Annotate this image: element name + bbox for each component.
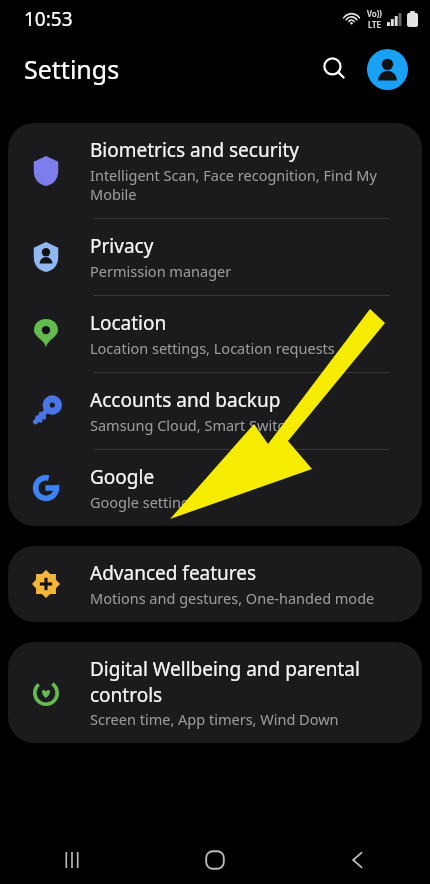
staticText: Privacy [90,233,154,259]
button[interactable]: Privacy [8,219,422,295]
staticText: Vo)) [367,8,382,19]
staticText: Digital Wellbeing and parental controls [90,656,402,707]
staticText: 10:53 [24,6,73,32]
staticText: Permission manager [90,261,232,281]
staticText: Intelligent Scan, Face recognition, Find… [90,165,402,204]
button[interactable]: Accounts and backup [8,373,422,449]
staticText: Google [90,464,155,490]
staticText: Accounts and backup [90,387,281,413]
button[interactable]: Home [180,837,250,883]
staticText: Google settings [90,492,197,512]
button[interactable]: Back [323,837,393,883]
button[interactable]: Biometrics and security [8,123,422,218]
button[interactable]: Search [311,46,357,92]
staticText: Samsung Cloud, Smart Switch [90,415,294,435]
button[interactable]: Recents [37,837,107,883]
button[interactable]: Account [367,49,408,90]
staticText: Biometrics and security [90,137,300,163]
staticText: Location settings, Location requests [90,338,335,358]
staticText: Settings [24,52,120,86]
button[interactable]: Google [8,450,422,526]
button[interactable]: Advanced features [8,546,422,622]
staticText: Screen time, App timers, Wind Down [90,709,339,729]
button[interactable]: Digital Wellbeing and parental controls [8,642,422,743]
staticText: LTE [368,19,382,30]
staticText: Location [90,310,167,336]
button[interactable]: Location [8,296,422,372]
staticText: Advanced features [90,560,257,586]
staticText: Motions and gestures, One-handed mode [90,588,375,608]
